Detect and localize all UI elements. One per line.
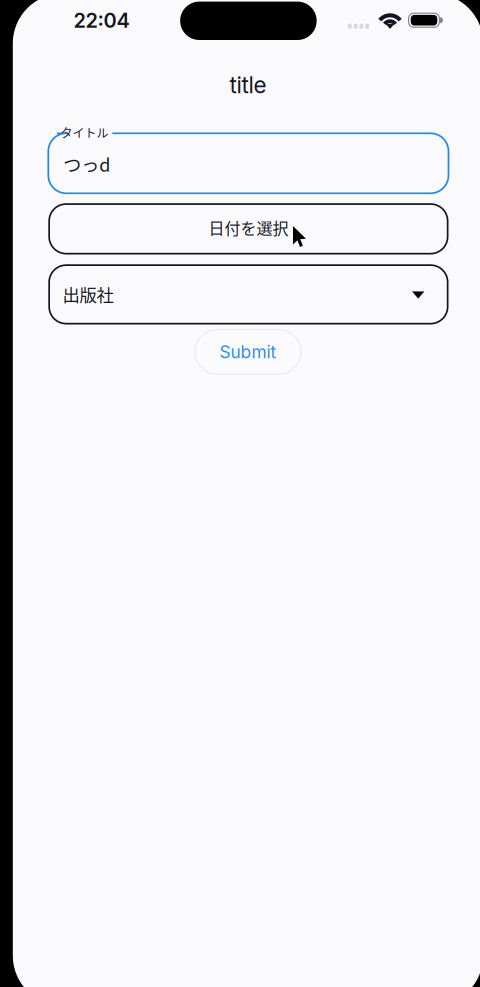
button[interactable]: 出版社	[48, 264, 448, 324]
staticText: タイトル	[61, 124, 109, 141]
button[interactable]: Submit	[195, 329, 301, 374]
staticText: title	[229, 71, 266, 99]
button[interactable]: 日付を選択	[48, 203, 448, 254]
staticText: 日付を選択	[208, 216, 288, 239]
staticText: 出版社	[63, 282, 114, 307]
staticText: 22:04	[73, 8, 129, 33]
staticText: Submit	[219, 341, 276, 362]
staticText: つっd	[63, 151, 110, 177]
button[interactable]: タイトル	[48, 128, 448, 198]
